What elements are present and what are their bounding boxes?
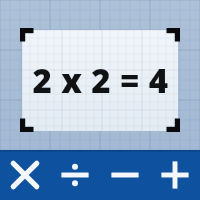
staticText: 2 x 2 = 4 bbox=[32, 58, 169, 103]
button[interactable]: Subtract bbox=[100, 150, 150, 200]
button[interactable]: Multiply bbox=[0, 150, 50, 200]
button[interactable]: Add bbox=[150, 150, 200, 200]
button[interactable]: Divide bbox=[50, 150, 100, 200]
